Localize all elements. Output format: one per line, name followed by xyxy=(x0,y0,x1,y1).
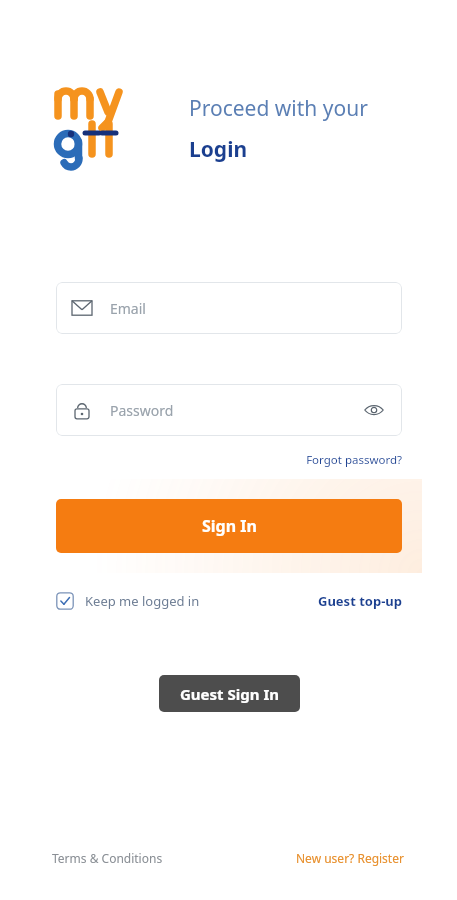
button[interactable]: Terms & Conditions xyxy=(52,850,163,866)
staticText: Login xyxy=(189,135,248,164)
button[interactable]: Sign In xyxy=(56,499,402,553)
button[interactable]: Forgot password? xyxy=(280,450,402,470)
staticText: Keep me logged in xyxy=(85,592,200,610)
staticText: New user? Register xyxy=(296,850,404,866)
staticText: Guest Sign In xyxy=(180,684,279,704)
staticText: Proceed with your xyxy=(189,94,368,123)
button[interactable]: Email xyxy=(56,282,402,334)
button[interactable]: Guest top-up xyxy=(318,592,402,610)
staticText: Guest top-up xyxy=(318,592,402,610)
button[interactable]: Guest Sign In xyxy=(159,675,300,712)
staticText: Terms & Conditions xyxy=(52,850,163,866)
staticText: Email xyxy=(110,299,146,318)
button[interactable]: Show password xyxy=(362,398,386,422)
button[interactable]: Password xyxy=(56,384,402,436)
button[interactable]: Keep me logged in xyxy=(56,592,200,610)
staticText: Forgot password? xyxy=(280,452,402,468)
staticText: Password xyxy=(110,401,174,420)
button[interactable]: New user? Register xyxy=(296,850,404,866)
staticText: Sign In xyxy=(202,515,257,537)
